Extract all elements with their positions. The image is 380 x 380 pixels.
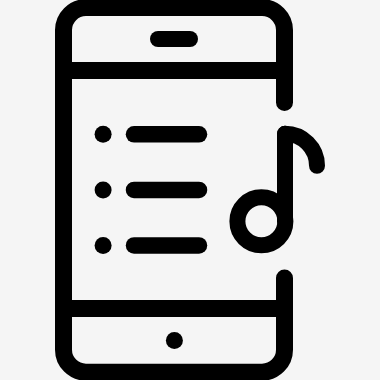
button[interactable]: Mobile music playlist <box>0 0 380 380</box>
